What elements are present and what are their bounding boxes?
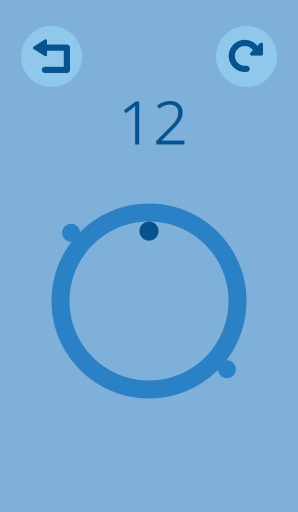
button[interactable]: Back [21, 26, 82, 87]
button[interactable]: Restart [216, 26, 277, 87]
staticText: 12 [118, 79, 188, 162]
